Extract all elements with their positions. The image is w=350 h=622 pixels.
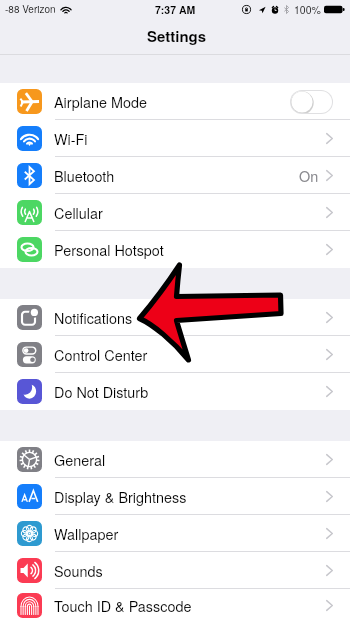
staticText: On [299, 165, 319, 186]
button[interactable]: Cellular [0, 194, 350, 231]
staticText: Do Not Disturb [54, 381, 149, 402]
staticText: General [54, 449, 106, 470]
button[interactable]: Do Not Disturb [0, 373, 350, 410]
staticText: Sounds [54, 560, 103, 581]
staticText: 7:37 AM [155, 2, 196, 17]
staticText: Airplane Mode [54, 91, 147, 112]
button[interactable]: Airplane Mode [0, 83, 350, 120]
staticText: Wallpaper [54, 523, 119, 544]
button[interactable]: General [0, 441, 350, 478]
staticText: Touch ID & Passcode [54, 595, 192, 616]
button[interactable]: Display & Brightness [0, 478, 350, 515]
button[interactable]: Touch ID & Passcode [0, 589, 350, 622]
button[interactable]: Wallpaper [0, 515, 350, 552]
staticText: Personal Hotspot [54, 239, 164, 260]
staticText: Cellular [54, 202, 103, 223]
staticText: Settings [147, 25, 207, 46]
button[interactable]: Notifications [0, 299, 350, 336]
button[interactable]: Bluetooth [0, 157, 350, 194]
staticText: Bluetooth [54, 165, 115, 186]
staticText: Notifications [54, 307, 133, 328]
staticText: Control Center [54, 344, 148, 365]
button[interactable]: Control Center [0, 336, 350, 373]
button[interactable]: Personal Hotspot [0, 231, 350, 268]
button[interactable]: Sounds [0, 552, 350, 589]
staticText: Display & Brightness [54, 486, 187, 507]
staticText: 100% [294, 2, 321, 17]
staticText: Wi-Fi [54, 128, 88, 149]
staticText: -88 Verizon [5, 2, 56, 16]
button[interactable]: Wi-Fi [0, 120, 350, 157]
